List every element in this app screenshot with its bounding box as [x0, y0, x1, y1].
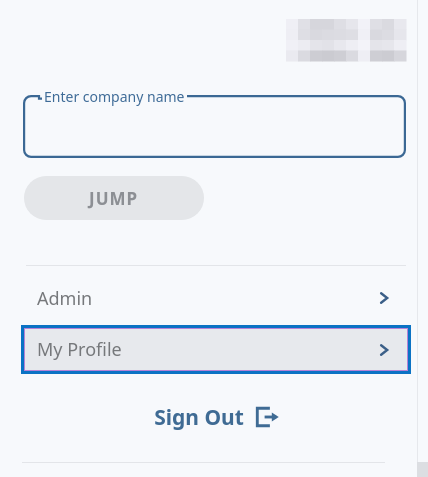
staticText: Enter company name: [44, 87, 185, 106]
staticText: Admin: [37, 286, 93, 311]
staticText: Sign Out: [154, 403, 244, 432]
button[interactable]: JUMP: [24, 176, 204, 220]
button[interactable]: Enter company name: [23, 95, 406, 158]
staticText: My Profile: [37, 337, 122, 362]
button[interactable]: Sign Out: [150, 400, 283, 434]
staticText: JUMP: [89, 187, 139, 210]
button[interactable]: Admin: [23, 274, 411, 322]
button[interactable]: My Profile: [21, 325, 411, 374]
